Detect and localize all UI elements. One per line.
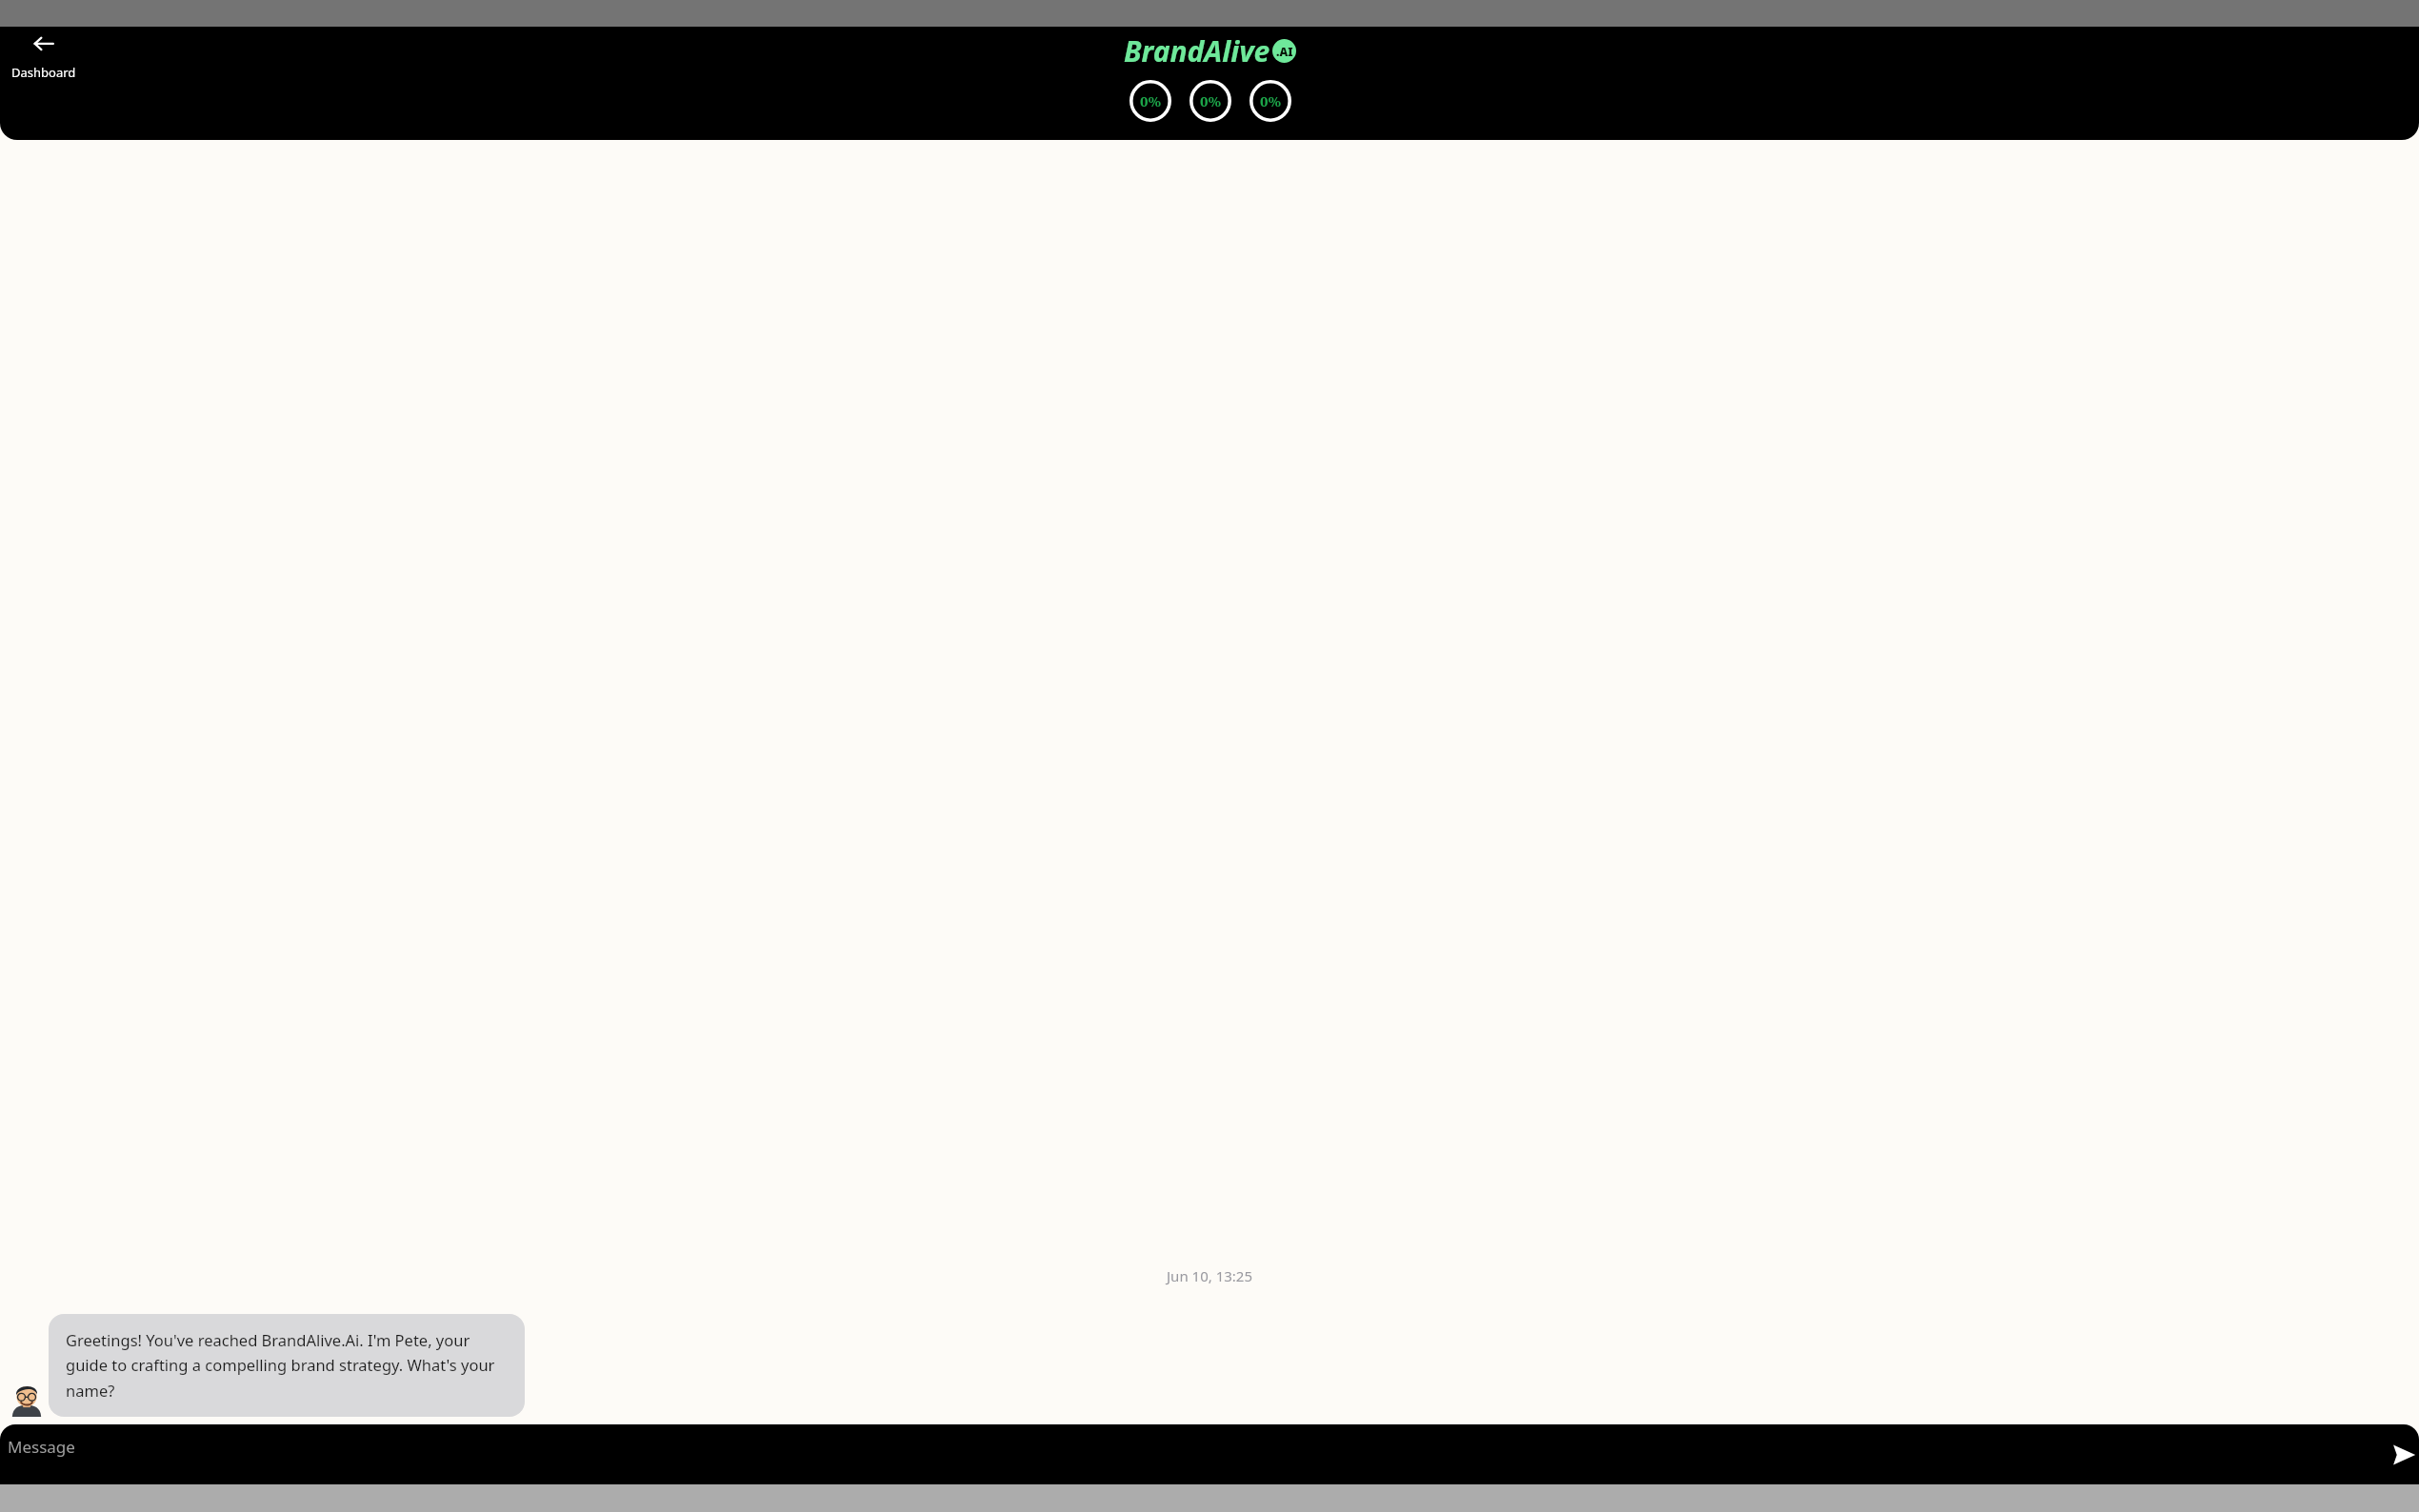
staticText: Jun 10, 13:25 [0, 1266, 2419, 1285]
button[interactable]: Greetings! You've reached BrandAlive.Ai.… [49, 1314, 525, 1417]
button[interactable]: Back to Dashboard [6, 30, 82, 84]
staticText: Dashboard [11, 64, 76, 81]
staticText: 0% [1140, 91, 1162, 110]
staticText: 0% [1200, 91, 1222, 110]
button[interactable]: Progress 0 percent [1249, 80, 1291, 122]
staticText: .AI [1276, 44, 1293, 59]
button[interactable]: Send [2383, 1434, 2419, 1476]
button[interactable]: Progress 0 percent [1190, 80, 1231, 122]
staticText: Message [8, 1436, 75, 1458]
staticText: BrandAlive [1124, 31, 1270, 70]
staticText: Greetings! You've reached BrandAlive.Ai.… [66, 1329, 508, 1402]
staticText: 0% [1260, 91, 1282, 110]
button[interactable]: Message [0, 1424, 2419, 1484]
button[interactable]: Progress 0 percent [1130, 80, 1171, 122]
